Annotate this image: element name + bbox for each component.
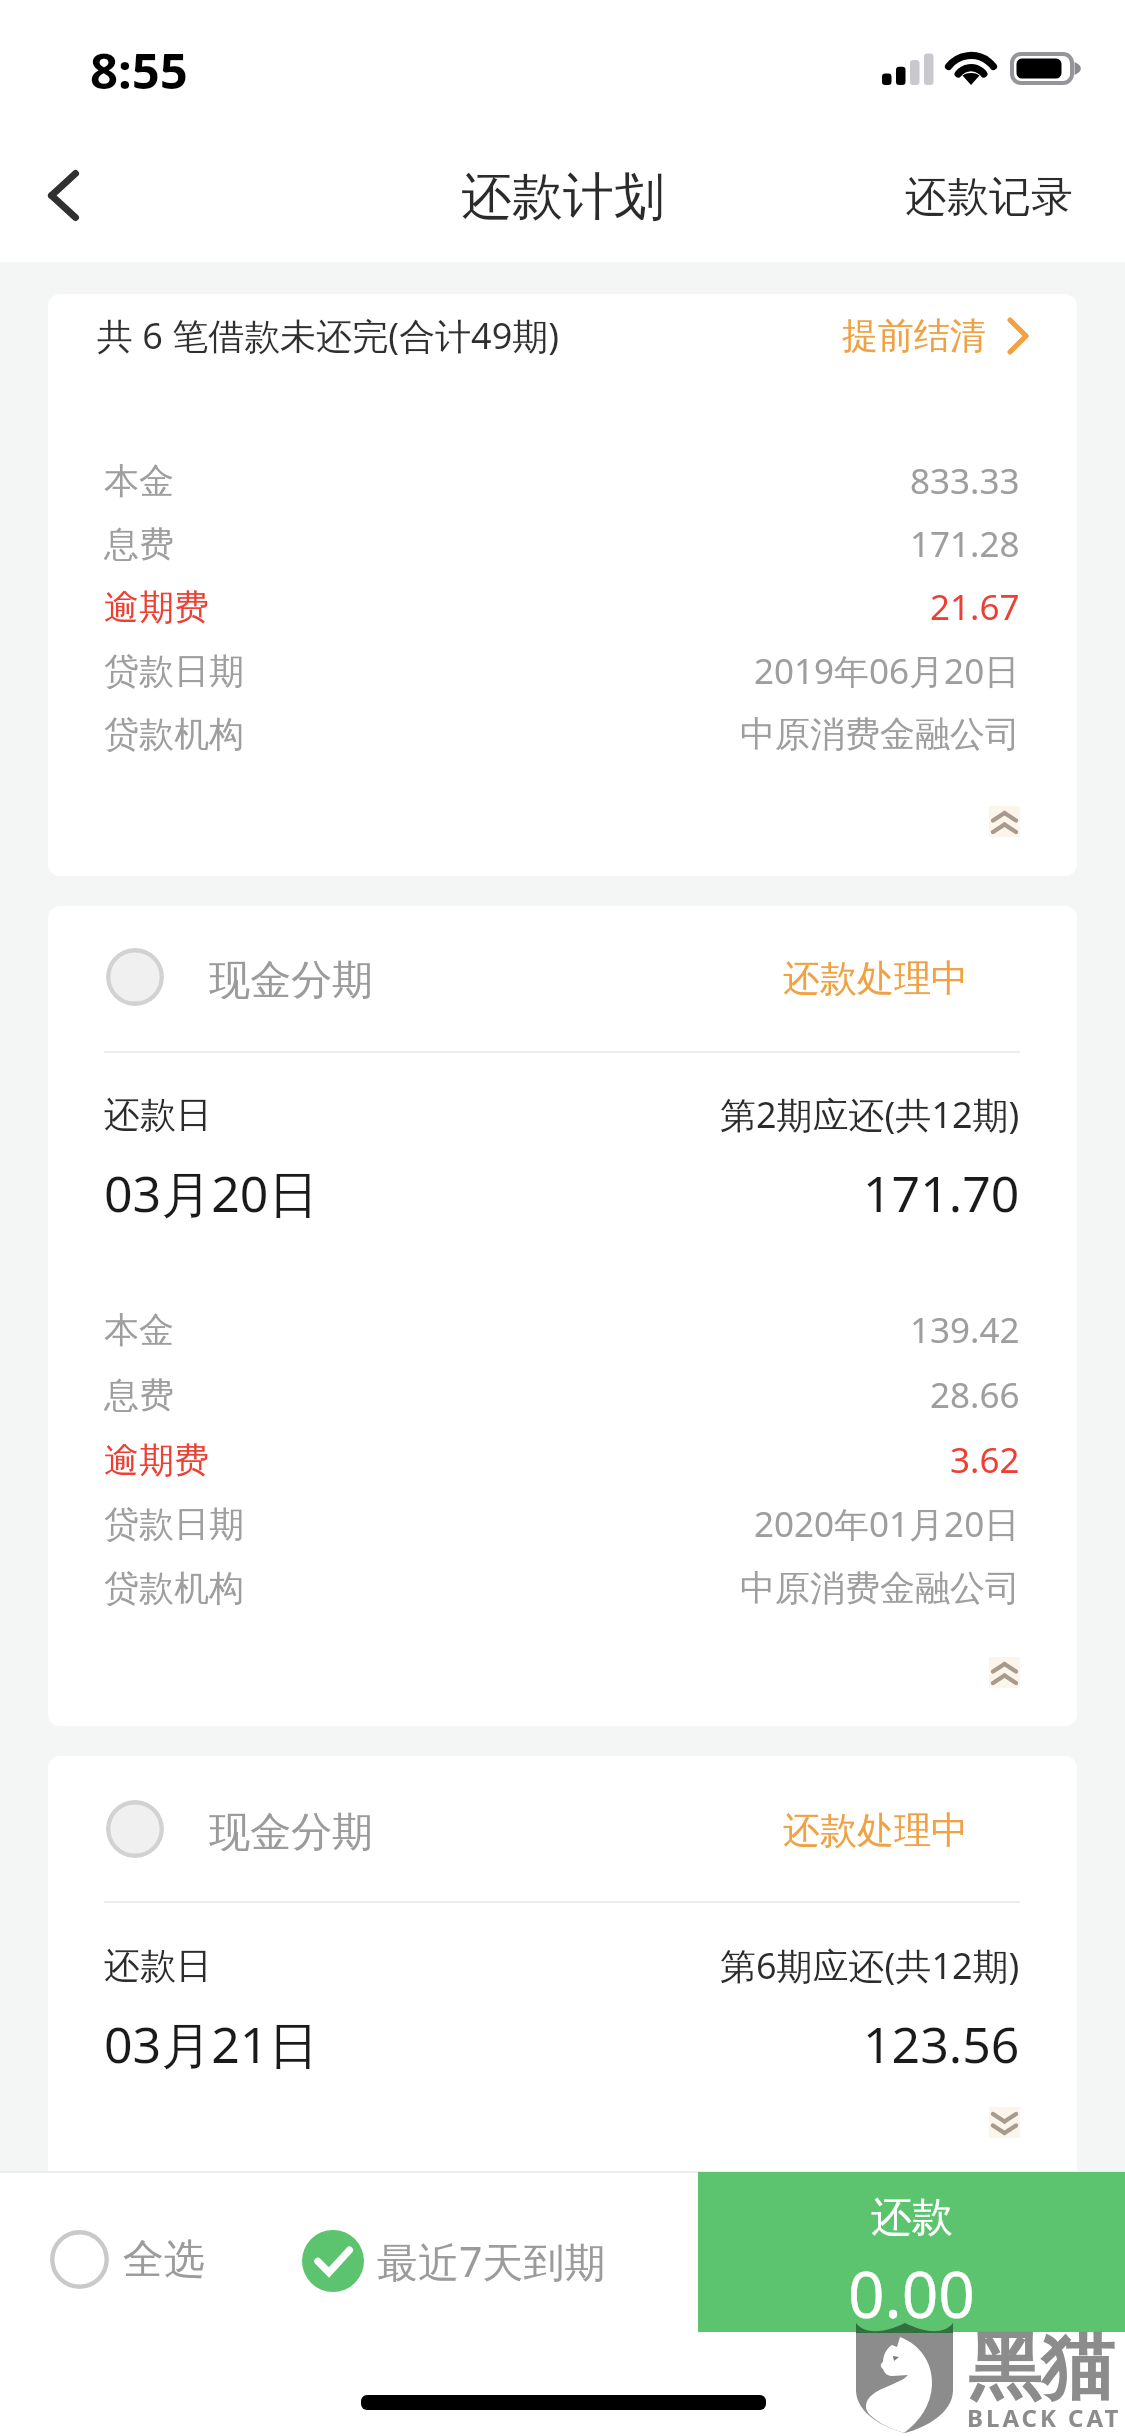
button[interactable]: 提前结清 bbox=[838, 307, 1033, 364]
staticText: 2019年06月20日 bbox=[754, 647, 1020, 695]
staticText: 还款处理中 bbox=[783, 1807, 968, 1851]
staticText: 171.70 bbox=[863, 1159, 1020, 1223]
button[interactable]: Select installment bbox=[106, 1800, 164, 1858]
staticText: 本金 bbox=[104, 1308, 174, 1352]
staticText: 本金 bbox=[104, 459, 174, 503]
staticText: 139.42 bbox=[910, 1306, 1020, 1354]
button[interactable]: Select installment bbox=[106, 948, 164, 1006]
button[interactable]: Select installment bbox=[48, 1756, 1077, 2186]
staticText: 贷款日期 bbox=[104, 649, 244, 693]
staticText: 0.00 bbox=[848, 2250, 975, 2337]
staticText: 03月21日 bbox=[104, 2010, 319, 2074]
staticText: 123.56 bbox=[863, 2010, 1020, 2074]
staticText: 第6期应还(共12期) bbox=[720, 1941, 1020, 1989]
staticText: 现金分期 bbox=[209, 1807, 373, 1851]
staticText: 全选 bbox=[123, 2234, 205, 2286]
staticText: 现金分期 bbox=[209, 955, 373, 999]
staticText: 3.62 bbox=[950, 1436, 1020, 1484]
button[interactable]: Collapse bbox=[989, 806, 1020, 837]
button[interactable]: 全选 bbox=[36, 2216, 221, 2303]
staticText: 还款处理中 bbox=[783, 955, 968, 999]
staticText: 还款计划 bbox=[461, 165, 665, 229]
staticText: 息费 bbox=[104, 522, 174, 566]
staticText: 2020年01月20日 bbox=[754, 1500, 1020, 1548]
button[interactable]: Expand bbox=[989, 2107, 1020, 2138]
staticText: 提前结清 bbox=[842, 313, 986, 358]
staticText: 贷款机构 bbox=[104, 1566, 244, 1610]
staticText: BLACK CAT bbox=[967, 2401, 1122, 2434]
staticText: 贷款机构 bbox=[104, 712, 244, 756]
staticText: 共 6 笔借款未还完(合计49期) bbox=[97, 311, 560, 360]
staticText: 21.67 bbox=[930, 583, 1020, 631]
staticText: 还款日 bbox=[104, 1943, 212, 1988]
staticText: 833.33 bbox=[910, 457, 1020, 505]
button[interactable]: Collapse bbox=[989, 1657, 1020, 1688]
staticText: 28.66 bbox=[930, 1371, 1020, 1419]
staticText: 黑猫 bbox=[968, 2322, 1114, 2414]
button[interactable]: Back bbox=[0, 132, 128, 262]
button[interactable]: 还款 bbox=[698, 2172, 1125, 2332]
staticText: 还款日 bbox=[104, 1092, 212, 1137]
staticText: 逾期费 bbox=[104, 1438, 209, 1482]
staticText: 还款 bbox=[871, 2192, 953, 2244]
staticText: 还款记录 bbox=[905, 171, 1073, 224]
staticText: 中原消费金融公司 bbox=[740, 1566, 1020, 1610]
staticText: 中原消费金融公司 bbox=[740, 712, 1020, 756]
staticText: 8:55 bbox=[90, 37, 188, 104]
staticText: 逾期费 bbox=[104, 585, 209, 629]
button[interactable]: 还款记录 bbox=[875, 149, 1125, 246]
staticText: 息费 bbox=[104, 1373, 174, 1417]
staticText: 贷款日期 bbox=[104, 1502, 244, 1546]
staticText: 171.28 bbox=[910, 520, 1020, 568]
button[interactable]: 最近7天到期 bbox=[288, 2216, 622, 2306]
staticText: 第2期应还(共12期) bbox=[720, 1090, 1020, 1138]
button[interactable]: Select installment bbox=[48, 906, 1077, 1726]
staticText: 最近7天到期 bbox=[377, 2233, 606, 2289]
staticText: 03月20日 bbox=[104, 1159, 319, 1223]
